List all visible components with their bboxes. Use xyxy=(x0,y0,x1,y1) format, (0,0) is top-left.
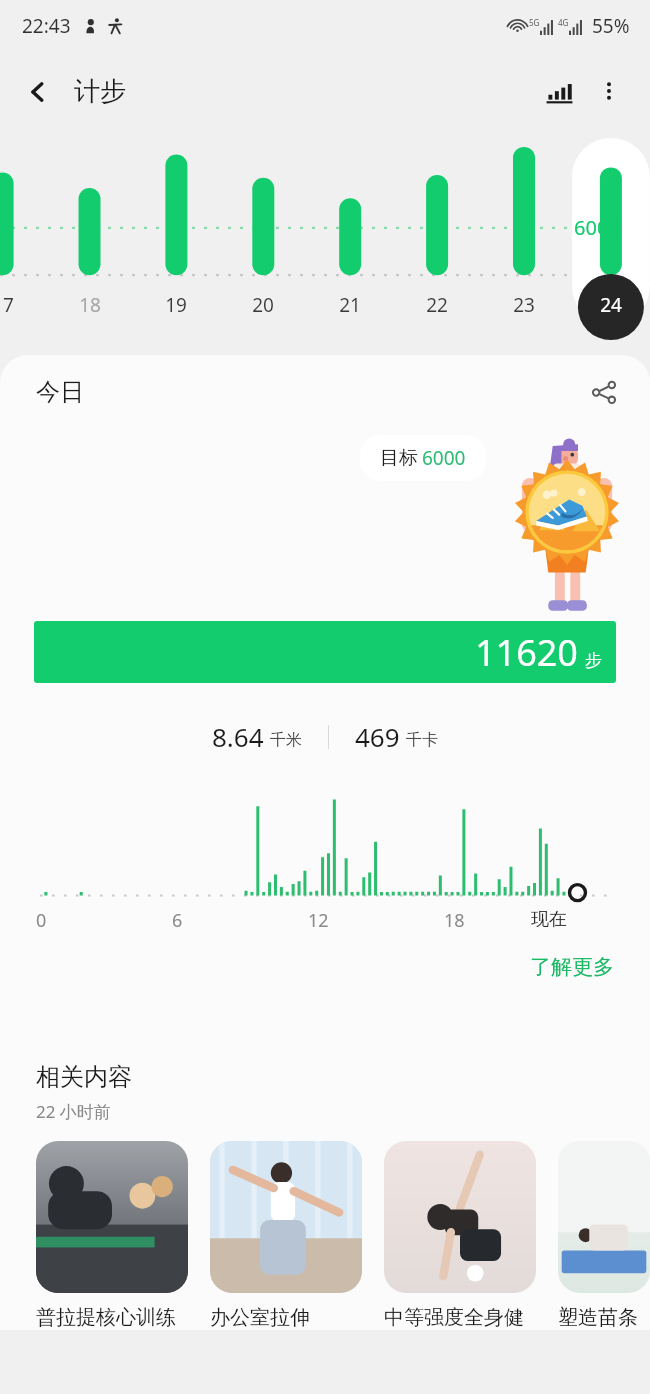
staticText: 22 小时前 xyxy=(36,1100,111,1123)
staticText: 17 xyxy=(0,292,25,318)
staticText: 6000 xyxy=(574,214,620,241)
staticText: 6 xyxy=(172,908,183,933)
staticText: 22 xyxy=(415,292,459,318)
staticText: 20 xyxy=(241,292,285,318)
staticText: 千米 xyxy=(270,730,302,750)
button[interactable]: 11620 xyxy=(34,621,616,683)
button[interactable]: Back xyxy=(0,65,144,118)
other: Back xyxy=(26,80,50,104)
staticText: 现在 xyxy=(531,908,567,931)
staticText: 目标 xyxy=(380,446,418,470)
staticText: 8.64 xyxy=(212,719,264,754)
staticText: 普拉提核心训练 xyxy=(36,1305,176,1330)
staticText: 塑造苗条 xyxy=(558,1305,638,1330)
staticText: 5G xyxy=(529,17,540,28)
staticText: 21 xyxy=(328,292,372,318)
staticText: 0 xyxy=(36,908,47,933)
staticText: 步 xyxy=(585,650,602,671)
button[interactable]: Share xyxy=(580,368,628,416)
staticText: 55% xyxy=(592,13,630,39)
staticText: 中等强度全身健 xyxy=(384,1305,524,1330)
button[interactable]: 了解更多 xyxy=(516,946,650,988)
staticText: 469 xyxy=(355,719,400,754)
staticText: 24 xyxy=(589,292,633,318)
staticText: 18 xyxy=(68,292,112,318)
staticText: 办公室拉伸 xyxy=(210,1305,310,1330)
staticText: 11620 xyxy=(475,628,578,677)
staticText: 23 xyxy=(502,292,546,318)
staticText: 千卡 xyxy=(406,730,438,750)
staticText: 4G xyxy=(558,17,569,28)
staticText: 18 xyxy=(444,908,465,933)
button[interactable]: 办公室拉伸 xyxy=(210,1141,362,1330)
button[interactable]: 塑造苗条 xyxy=(558,1141,650,1330)
staticText: 12 xyxy=(308,908,329,933)
staticText: 6000 xyxy=(422,445,466,471)
button[interactable]: 中等强度全身健 xyxy=(384,1141,536,1330)
button[interactable]: Trends chart xyxy=(534,66,584,116)
staticText: 22:43 xyxy=(22,13,71,39)
staticText: 相关内容 xyxy=(36,1062,132,1092)
button[interactable]: More options xyxy=(584,66,634,116)
staticText: 计步 xyxy=(74,75,126,108)
staticText: 今日 xyxy=(36,377,84,407)
button[interactable]: 普拉提核心训练 xyxy=(36,1141,188,1330)
staticText: 19 xyxy=(154,292,198,318)
